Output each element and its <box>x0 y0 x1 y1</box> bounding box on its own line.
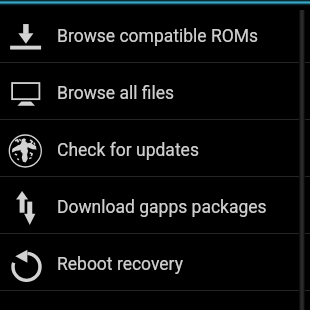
button[interactable]: Browse all files <box>0 63 310 119</box>
staticText: Check for updates <box>57 140 199 161</box>
staticText: Browse all files <box>57 83 175 104</box>
staticText: Browse compatible ROMs <box>57 26 259 47</box>
button[interactable]: Reboot recovery <box>0 234 310 290</box>
button[interactable]: Download gapps packages <box>0 177 310 233</box>
button[interactable]: Check for updates <box>0 120 310 176</box>
staticText: Download gapps packages <box>57 197 267 218</box>
button[interactable]: Browse compatible ROMs <box>0 6 310 62</box>
staticText: Reboot recovery <box>57 254 183 275</box>
